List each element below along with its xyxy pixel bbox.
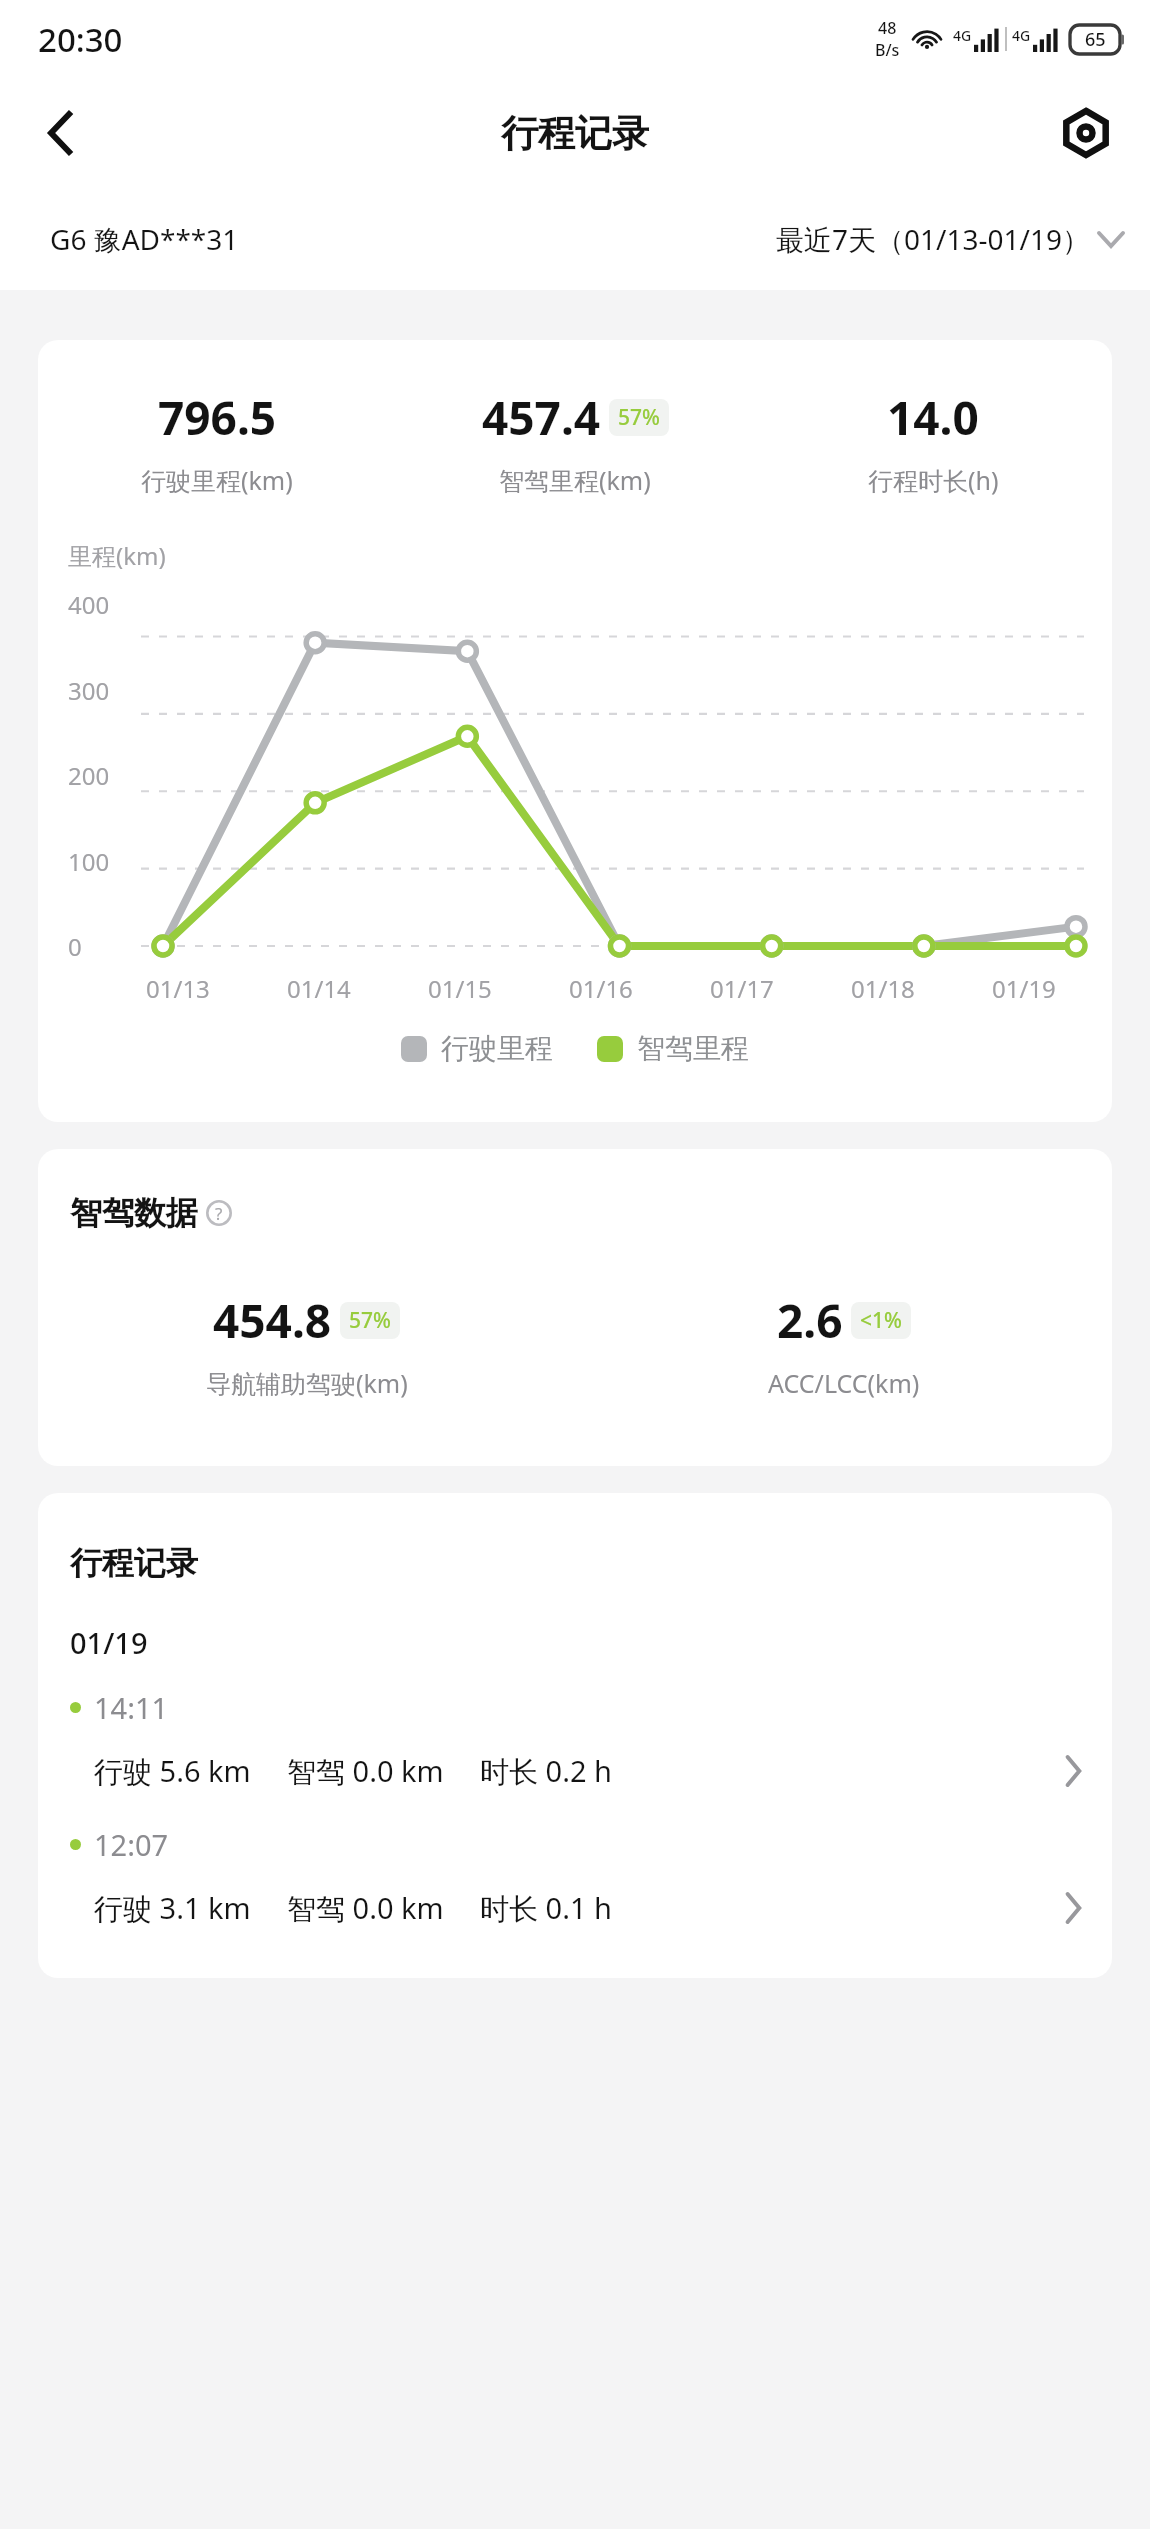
staticText: 智驾数据	[70, 1193, 198, 1233]
staticText: 01/19	[992, 972, 1056, 1005]
staticText: 行驶 3.1 km	[94, 1888, 251, 1928]
staticText: B/s	[875, 39, 900, 61]
button[interactable]: G6 豫AD***31	[50, 220, 239, 258]
staticText: 行驶里程(km)	[141, 463, 293, 497]
staticText: 100	[68, 845, 110, 878]
staticText: 01/17	[710, 972, 774, 1005]
staticText: 里程(km)	[68, 539, 166, 572]
button[interactable]: 最近7天（01/13-01/19）	[776, 220, 1124, 258]
button[interactable]: Help	[204, 1198, 234, 1228]
staticText: ?	[215, 1202, 223, 1225]
staticText: 457.4	[482, 386, 601, 449]
staticText: 0	[68, 930, 82, 963]
staticText: G6 豫AD***31	[50, 220, 239, 258]
staticText: 行驶里程	[441, 1031, 553, 1066]
staticText: 12:07	[94, 1825, 169, 1864]
staticText: 57%	[349, 1306, 391, 1335]
button[interactable]: Back	[24, 95, 100, 171]
staticText: 智驾里程(km)	[499, 463, 651, 497]
staticText: 57%	[618, 403, 660, 432]
staticText: ACC/LCC(km)	[768, 1366, 920, 1400]
button[interactable]: Settings	[1048, 95, 1124, 171]
staticText: 行程记录	[70, 1543, 198, 1583]
staticText: 行驶 5.6 km	[94, 1751, 251, 1791]
staticText: 796.5	[158, 386, 277, 449]
button[interactable]: 智驾里程	[597, 1031, 749, 1066]
button[interactable]: 12:07	[38, 1825, 1112, 1928]
staticText: 时长 0.1 h	[480, 1888, 612, 1928]
staticText: 01/16	[569, 972, 633, 1005]
staticText: 4G	[953, 26, 972, 45]
staticText: 智驾里程	[637, 1031, 749, 1066]
staticText: 14:11	[94, 1688, 169, 1727]
staticText: 01/14	[287, 972, 351, 1005]
button[interactable]: 行驶里程	[401, 1031, 553, 1066]
staticText: 200	[68, 759, 110, 792]
staticText: 01/18	[851, 972, 915, 1005]
staticText: 01/19	[70, 1623, 148, 1662]
staticText: 01/13	[146, 972, 210, 1005]
staticText: 20:30	[38, 17, 123, 62]
button[interactable]: 14:11	[38, 1688, 1112, 1791]
staticText: 4G	[1012, 26, 1031, 45]
staticText: 时长 0.2 h	[480, 1751, 612, 1791]
staticText: 48	[878, 17, 897, 39]
staticText: 65	[1085, 27, 1106, 52]
staticText: 行程记录	[501, 110, 649, 157]
staticText: <1%	[860, 1306, 902, 1335]
staticText: 智驾 0.0 km	[287, 1751, 444, 1791]
staticText: 454.8	[213, 1289, 332, 1352]
staticText: 导航辅助驾驶(km)	[206, 1366, 408, 1400]
staticText: 2.6	[777, 1289, 843, 1352]
staticText: 14.0	[887, 386, 979, 449]
staticText: 400	[68, 588, 110, 621]
staticText: 300	[68, 674, 110, 707]
staticText: 智驾 0.0 km	[287, 1888, 444, 1928]
staticText: 01/15	[428, 972, 492, 1005]
staticText: 最近7天（01/13-01/19）	[776, 220, 1090, 258]
staticText: 行程时长(h)	[868, 463, 999, 497]
